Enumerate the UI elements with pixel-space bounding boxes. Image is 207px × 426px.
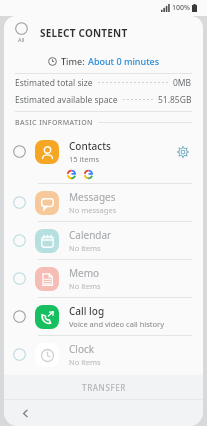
staticText: Call log [69, 304, 105, 318]
staticText: 100% [172, 3, 190, 13]
button[interactable]: Messages [4, 184, 203, 221]
button[interactable]: Time: [4, 49, 203, 73]
button[interactable]: TRANSFER [4, 375, 203, 399]
button[interactable]: Back [16, 404, 34, 422]
staticText: 15 items [69, 154, 100, 164]
staticText: Contacts [69, 139, 111, 153]
staticText: Messages [69, 190, 116, 204]
staticText: 51.85GB [158, 94, 192, 106]
button[interactable]: Clock [4, 336, 203, 373]
staticText: 0MB [173, 77, 192, 89]
staticText: Calendar [69, 228, 112, 242]
staticText: SELECT CONTENT [40, 26, 128, 40]
staticText: About 0 minutes [88, 55, 160, 67]
button[interactable]: Calendar [4, 222, 203, 259]
button[interactable]: Call log [4, 298, 203, 335]
staticText: BASIC INFORMATION [15, 118, 93, 128]
staticText: Clock [69, 342, 95, 356]
staticText: No messages [69, 205, 117, 215]
staticText: TRANSFER [82, 382, 126, 393]
button[interactable]: Memo [4, 260, 203, 297]
button[interactable]: Select all [13, 20, 30, 45]
staticText: All [18, 36, 25, 43]
staticText: Time: [61, 55, 85, 67]
staticText: Voice and video call history [69, 319, 165, 329]
staticText: No items [69, 281, 101, 291]
staticText: Estimated available space [15, 94, 118, 106]
staticText: Estimated total size [15, 77, 93, 89]
staticText: No items [69, 243, 101, 253]
staticText: Memo [69, 266, 100, 280]
button[interactable]: Contacts settings [174, 143, 192, 161]
button[interactable]: Contacts [4, 133, 203, 170]
staticText: No items [69, 357, 101, 367]
